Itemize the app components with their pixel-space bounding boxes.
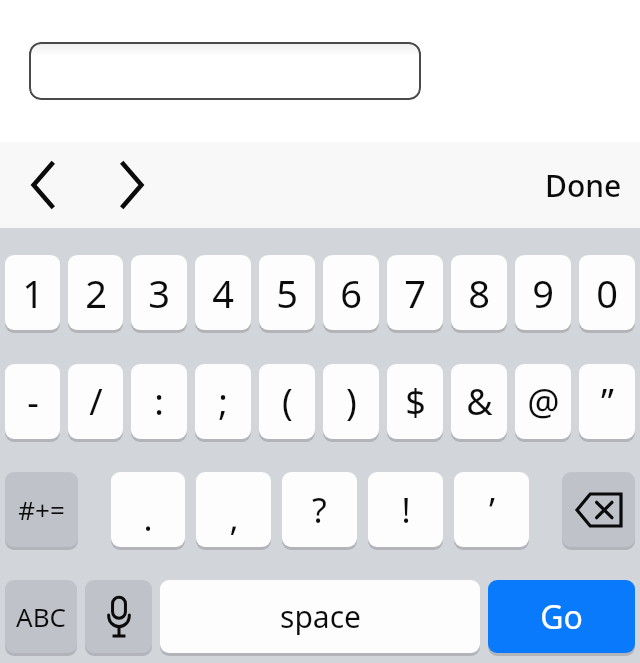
staticText: 2 [85,267,107,319]
staticText: , [229,495,239,541]
button[interactable]: : [131,364,187,442]
staticText: 7 [404,267,426,319]
staticText: 1 [22,267,44,319]
staticText: : [154,377,164,426]
staticText: 4 [212,267,234,319]
staticText: ) [346,377,357,426]
button[interactable]: 2 [68,255,123,333]
button[interactable]: ) [323,364,379,442]
staticText: & [466,377,493,426]
button[interactable]: 4 [195,255,251,333]
button[interactable]: $ [387,364,443,442]
staticText: space [280,596,361,637]
button[interactable]: 6 [323,255,379,333]
button[interactable]: Done [537,142,630,228]
staticText: . [143,495,153,541]
button[interactable]: Next field [101,142,161,228]
button[interactable]: #+= [5,472,78,550]
button[interactable]: space [160,580,480,656]
button[interactable]: - [5,364,60,442]
button[interactable]: 9 [515,255,571,333]
staticText: ABC [16,599,66,634]
staticText: $ [405,377,426,426]
button[interactable]: , [196,472,271,550]
staticText: ; [218,377,228,426]
button[interactable]: 0 [579,255,635,333]
button[interactable]: ABC [5,580,77,656]
staticText: ! [401,487,411,533]
button[interactable] [29,42,421,100]
staticText: ? [312,487,327,533]
button[interactable]: 7 [387,255,443,333]
button[interactable]: Backspace [562,472,635,550]
staticText: / [89,377,103,426]
staticText: #+= [18,492,65,527]
button[interactable]: Go [488,580,635,656]
button[interactable]: ? [282,472,357,550]
button[interactable]: Previous field [14,142,74,228]
staticText: Done [545,165,622,206]
button[interactable]: ’ [454,472,529,550]
button[interactable]: ; [195,364,251,442]
staticText: 5 [276,267,298,319]
button[interactable]: 8 [451,255,507,333]
staticText: 8 [468,267,490,319]
button[interactable]: ” [579,364,635,442]
button[interactable]: ( [259,364,315,442]
staticText: 6 [340,267,362,319]
button[interactable]: @ [515,364,571,442]
staticText: ” [601,377,614,426]
staticText: Go [540,595,583,639]
staticText: ’ [489,487,495,533]
button[interactable]: . [111,472,185,550]
staticText: @ [527,377,560,426]
staticText: ( [282,377,293,426]
button[interactable]: Dictate [85,580,152,656]
button[interactable]: 3 [131,255,187,333]
staticText: 3 [148,267,170,319]
staticText: - [27,377,39,426]
button[interactable]: ! [368,472,443,550]
button[interactable]: & [451,364,507,442]
button[interactable]: 5 [259,255,315,333]
button[interactable]: 1 [5,255,60,333]
staticText: 9 [532,267,554,319]
staticText: 0 [596,267,618,319]
button[interactable]: / [68,364,123,442]
